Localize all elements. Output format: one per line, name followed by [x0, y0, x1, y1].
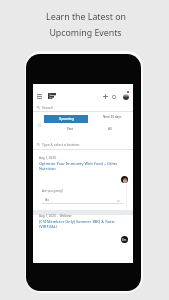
button[interactable]: Next 30 days [95, 114, 129, 120]
button[interactable]: Aug 1, 2020 - [33, 149, 133, 180]
button[interactable]: Upcoming [44, 115, 88, 123]
staticText: Upcoming Events [49, 27, 122, 39]
staticText: Learn the Latest on [46, 11, 126, 23]
button[interactable]: Past [57, 126, 83, 132]
staticText: Optimize Your Immunity With Food + Other… [39, 161, 118, 171]
staticText: [CSI Members Only] Summer BBQ & Toast (V… [39, 219, 115, 229]
staticText: Type & select a location. [42, 142, 81, 147]
staticText: Bm [122, 238, 127, 242]
staticText: Past [67, 127, 74, 131]
button[interactable]: No [42, 197, 123, 205]
staticText: Are you going? [42, 189, 63, 193]
staticText: Next 30 days [103, 115, 122, 119]
button[interactable]: Menu [35, 92, 44, 101]
button[interactable]: Aug 1, 2020 - Webinar [33, 211, 133, 241]
button[interactable]: Profile [123, 94, 129, 100]
button[interactable]: Type & select a location. [33, 140, 133, 149]
staticText: Aug 1, 2020 - [39, 156, 59, 160]
staticText: Search [42, 105, 53, 110]
staticText: All [108, 127, 112, 131]
staticText: Upcoming [59, 117, 74, 121]
button[interactable]: Add [101, 92, 110, 101]
button[interactable]: Notifications [109, 92, 118, 101]
staticText: No [45, 198, 50, 202]
staticText: Aug 1, 2020 - Webinar [39, 214, 72, 218]
button[interactable]: All [97, 126, 123, 132]
